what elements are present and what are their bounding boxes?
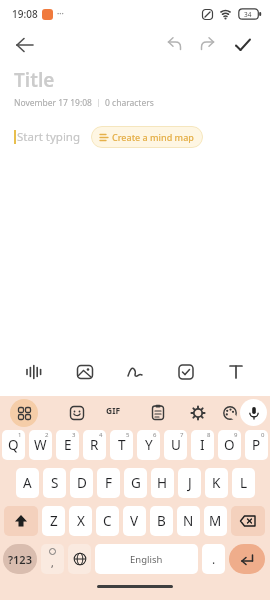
staticText: 9: [234, 431, 238, 439]
staticText: 19:08: [12, 7, 38, 21]
button[interactable]: W: [29, 430, 52, 460]
staticText: 8: [207, 431, 211, 439]
button[interactable]: Q: [2, 430, 25, 460]
button[interactable]: [69, 405, 85, 421]
staticText: GIF: [106, 405, 121, 417]
staticText: Q: [8, 436, 19, 454]
staticText: Y: [145, 436, 153, 454]
button[interactable]: Z: [42, 506, 65, 536]
button[interactable]: K: [205, 468, 228, 498]
staticText: E: [64, 436, 72, 454]
staticText: F: [105, 474, 113, 492]
button[interactable]: A: [16, 468, 39, 498]
button[interactable]: [164, 35, 184, 55]
staticText: V: [130, 512, 139, 530]
button[interactable]: D: [70, 468, 93, 498]
staticText: I: [200, 436, 205, 454]
button[interactable]: [229, 544, 265, 574]
staticText: ?123: [8, 552, 32, 567]
button[interactable]: L: [232, 468, 255, 498]
staticText: November 17 19:08: [14, 97, 92, 109]
button[interactable]: T: [110, 430, 133, 460]
staticText: 4: [99, 431, 103, 439]
staticText: 7: [180, 431, 184, 439]
button[interactable]: S: [43, 468, 66, 498]
staticText: 6: [153, 431, 157, 439]
staticText: P: [252, 436, 261, 454]
staticText: •••: [57, 10, 64, 18]
button[interactable]: U: [164, 430, 187, 460]
button[interactable]: [10, 399, 38, 427]
button[interactable]: [75, 362, 95, 382]
button[interactable]: V: [123, 506, 146, 536]
button[interactable]: [240, 399, 267, 426]
staticText: O: [224, 436, 235, 454]
button[interactable]: Create a mind map: [91, 126, 203, 148]
button[interactable]: English: [95, 544, 198, 574]
staticText: 3: [72, 431, 76, 439]
staticText: 1: [18, 431, 22, 439]
button[interactable]: H: [151, 468, 174, 498]
staticText: English: [130, 553, 163, 566]
button[interactable]: [176, 362, 196, 382]
button[interactable]: [232, 34, 254, 56]
button[interactable]: J: [178, 468, 201, 498]
button[interactable]: [4, 506, 38, 536]
staticText: D: [77, 474, 87, 492]
button[interactable]: [222, 405, 238, 421]
button[interactable]: ,: [41, 544, 64, 574]
button[interactable]: R: [83, 430, 106, 460]
button[interactable]: I: [191, 430, 214, 460]
button[interactable]: P: [245, 430, 268, 460]
staticText: J: [188, 474, 192, 492]
staticText: T: [118, 436, 126, 454]
staticText: ,: [51, 556, 54, 570]
staticText: K: [212, 474, 221, 492]
button[interactable]: .: [202, 544, 225, 574]
button[interactable]: [24, 362, 44, 382]
button[interactable]: E: [56, 430, 79, 460]
button[interactable]: [151, 404, 166, 421]
button[interactable]: [125, 362, 145, 382]
staticText: S: [51, 474, 59, 492]
staticText: N: [183, 512, 194, 530]
staticText: X: [77, 512, 85, 530]
staticText: R: [90, 436, 99, 454]
button[interactable]: [198, 35, 218, 55]
staticText: Z: [50, 512, 58, 530]
staticText: 2: [45, 431, 49, 439]
button[interactable]: Y: [137, 430, 160, 460]
button[interactable]: X: [69, 506, 92, 536]
button[interactable]: O: [218, 430, 241, 460]
button[interactable]: B: [150, 506, 173, 536]
staticText: Start typing: [17, 129, 81, 145]
button[interactable]: C: [96, 506, 119, 536]
staticText: M: [209, 512, 222, 530]
button[interactable]: F: [97, 468, 120, 498]
staticText: A: [23, 474, 32, 492]
button[interactable]: [226, 362, 246, 382]
staticText: B: [157, 512, 166, 530]
staticText: U: [171, 436, 181, 454]
staticText: G: [131, 474, 141, 492]
staticText: Create a mind map: [112, 131, 194, 143]
staticText: C: [103, 512, 112, 530]
button[interactable]: [14, 33, 38, 57]
staticText: 34: [244, 10, 252, 19]
button[interactable]: N: [177, 506, 200, 536]
button[interactable]: ?123: [3, 544, 37, 574]
staticText: W: [34, 436, 47, 454]
button[interactable]: [68, 544, 91, 574]
button[interactable]: [231, 506, 265, 536]
staticText: L: [240, 474, 248, 492]
button[interactable]: G: [124, 468, 147, 498]
button[interactable]: M: [204, 506, 227, 536]
staticText: H: [157, 474, 168, 492]
staticText: 0 characters: [105, 97, 154, 109]
staticText: 5: [126, 431, 130, 439]
button[interactable]: GIF: [106, 405, 121, 417]
button[interactable]: [190, 405, 206, 421]
staticText: .: [212, 551, 216, 567]
staticText: 0: [261, 431, 265, 439]
staticText: Title: [14, 67, 55, 93]
